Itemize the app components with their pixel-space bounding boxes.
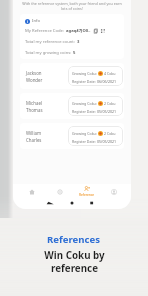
staticText: Charles [26,137,42,143]
staticText: Info [32,18,40,24]
staticText: With the reference system, both your fri… [15,1,129,11]
staticText: 4 Coku [103,71,116,76]
staticText: agaq47JO0.. [66,28,91,34]
staticText: My Reference Code: [25,28,66,34]
staticText: Michael [26,100,43,106]
staticText: 3 [77,39,80,45]
staticText: William [26,130,42,136]
staticText: Thomas [26,107,43,113]
button[interactable]: Profile [100,184,127,199]
staticText: Register Date: [72,109,97,114]
staticText: Jackson [26,70,42,76]
staticText: 2 Coku [103,131,116,136]
staticText: Register Date: [72,139,97,144]
button[interactable]: Michael [20,93,124,119]
staticText: Win Coku by reference [44,249,105,275]
staticText: Reference [79,193,95,197]
button[interactable]: Show QR code [100,28,106,34]
staticText: Wonder [26,77,43,83]
staticText: 05/05/2021 [97,139,117,144]
button[interactable]: Copy code [93,28,99,34]
button[interactable]: Reference [73,184,100,199]
staticText: 05/05/2021 [97,109,117,114]
staticText: Total my reference count: [25,39,77,45]
button[interactable]: Market [46,184,73,199]
staticText: Register Date: [72,79,97,84]
staticText: Growing Coku: [72,101,98,106]
button[interactable]: Home [18,184,46,199]
button[interactable]: William [20,123,124,149]
staticText: Growing Coku: [72,71,98,76]
staticText: Total my growing coins: [25,50,73,56]
staticText: 5 [73,50,76,56]
staticText: 06/06/2021 [97,79,117,84]
staticText: Growing Coku: [72,131,98,136]
staticText: References [47,233,101,246]
button[interactable]: Jackson [20,63,124,89]
staticText: 2 Coku [103,101,116,106]
